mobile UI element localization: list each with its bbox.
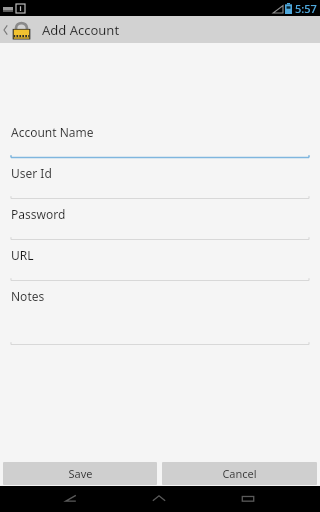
staticText: User Id [11, 165, 52, 181]
staticText: Add Account [42, 21, 120, 39]
button[interactable]: Navigate up [0, 19, 36, 41]
button[interactable]: Notes [0, 285, 320, 307]
button[interactable]: Save [3, 462, 157, 485]
button[interactable]: Password [0, 203, 320, 225]
staticText: URL [11, 247, 34, 263]
button[interactable]: URL [0, 244, 320, 266]
other: Password manager [11, 19, 32, 41]
other: Navigate up [3, 24, 8, 36]
button[interactable]: Recent apps [231, 486, 265, 512]
button[interactable]: Account Name [0, 121, 320, 143]
button[interactable]: Cancel [162, 462, 317, 485]
staticText: Account Name [11, 124, 94, 140]
staticText: 5:57 [295, 1, 317, 16]
button[interactable]: User Id [0, 162, 320, 184]
staticText: Password [11, 206, 66, 222]
staticText: Notes [11, 288, 45, 304]
button[interactable]: Back [54, 486, 88, 512]
staticText: Save [68, 466, 93, 481]
staticText: Cancel [222, 466, 257, 481]
button[interactable]: Home [142, 486, 176, 512]
